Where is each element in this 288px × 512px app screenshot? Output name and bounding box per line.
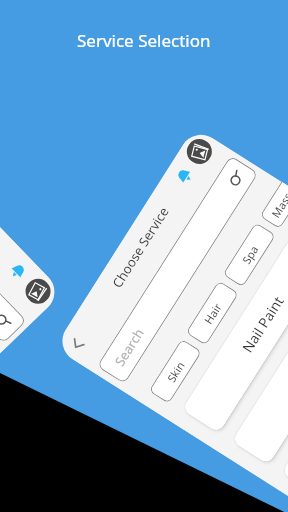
staticText: Search (110, 324, 148, 369)
button[interactable]: Profile (20, 274, 56, 309)
button[interactable]: Nail Paint (182, 215, 288, 433)
staticText: Spa (238, 243, 261, 267)
staticText: Massage (268, 184, 288, 220)
staticText: Service Selection (77, 29, 211, 52)
button[interactable]: Search (0, 141, 27, 344)
button[interactable]: Hair Spa (231, 247, 288, 465)
button[interactable]: Skin (149, 339, 202, 404)
button[interactable]: Hair (185, 280, 239, 346)
staticText: Choose Service (62, 132, 218, 363)
staticText: Skin (163, 358, 188, 385)
staticText: Nail Paint (238, 293, 287, 356)
button[interactable]: Notifications (7, 260, 29, 282)
staticText: Choose Service (0, 111, 56, 312)
button[interactable]: Massage (259, 182, 288, 229)
button[interactable]: Notifications (173, 165, 196, 187)
button[interactable]: Facial (281, 279, 288, 497)
button[interactable]: Search (97, 155, 258, 384)
button[interactable]: Back (63, 331, 91, 358)
button[interactable]: Profile (182, 134, 217, 169)
staticText: Hair (200, 300, 225, 327)
button[interactable]: Spa (222, 222, 276, 287)
